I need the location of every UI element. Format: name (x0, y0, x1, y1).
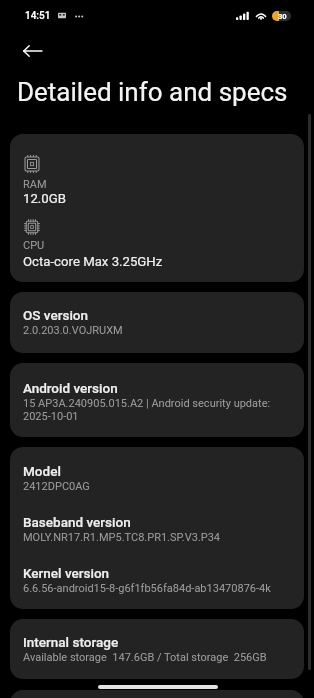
staticText: Kernel version (23, 565, 110, 581)
button[interactable]: Android version (10, 363, 304, 437)
staticText: Detailed info and specs (17, 77, 288, 107)
staticText: OS version (23, 307, 89, 323)
staticText: RAM (23, 178, 47, 191)
staticText: CPU (23, 239, 45, 252)
staticText: Baseband version (23, 514, 131, 530)
staticText: 12.0GB (23, 191, 66, 206)
button[interactable]: OS version (10, 292, 304, 353)
staticText: Internal storage (23, 634, 119, 650)
button[interactable]: Model (10, 447, 304, 609)
staticText: Model (23, 463, 61, 479)
staticText: Available storage 147.6GB / Total storag… (23, 651, 301, 664)
staticText: 6.6.56-android15-8-g6f1fb56fa84d-ab13470… (23, 582, 301, 595)
button[interactable]: RAM (10, 134, 304, 282)
staticText: 14:51 (25, 10, 51, 22)
staticText: 30 (278, 12, 287, 21)
staticText: 2.0.203.0.VOJRUXM (23, 324, 301, 337)
button[interactable]: Back (12, 31, 52, 71)
button[interactable]: Internal storage (10, 619, 304, 679)
button[interactable] (10, 690, 304, 698)
staticText: 15 AP3A.240905.015.A2 | Android security… (23, 397, 301, 423)
staticText: 2412DPC0AG (23, 480, 301, 493)
staticText: MOLY.NR17.R1.MP5.TC8.PR1.SP.V3.P34 (23, 531, 301, 544)
staticText: Android version (23, 380, 118, 396)
staticText: Octa-core Max 3.25GHz (23, 254, 163, 269)
